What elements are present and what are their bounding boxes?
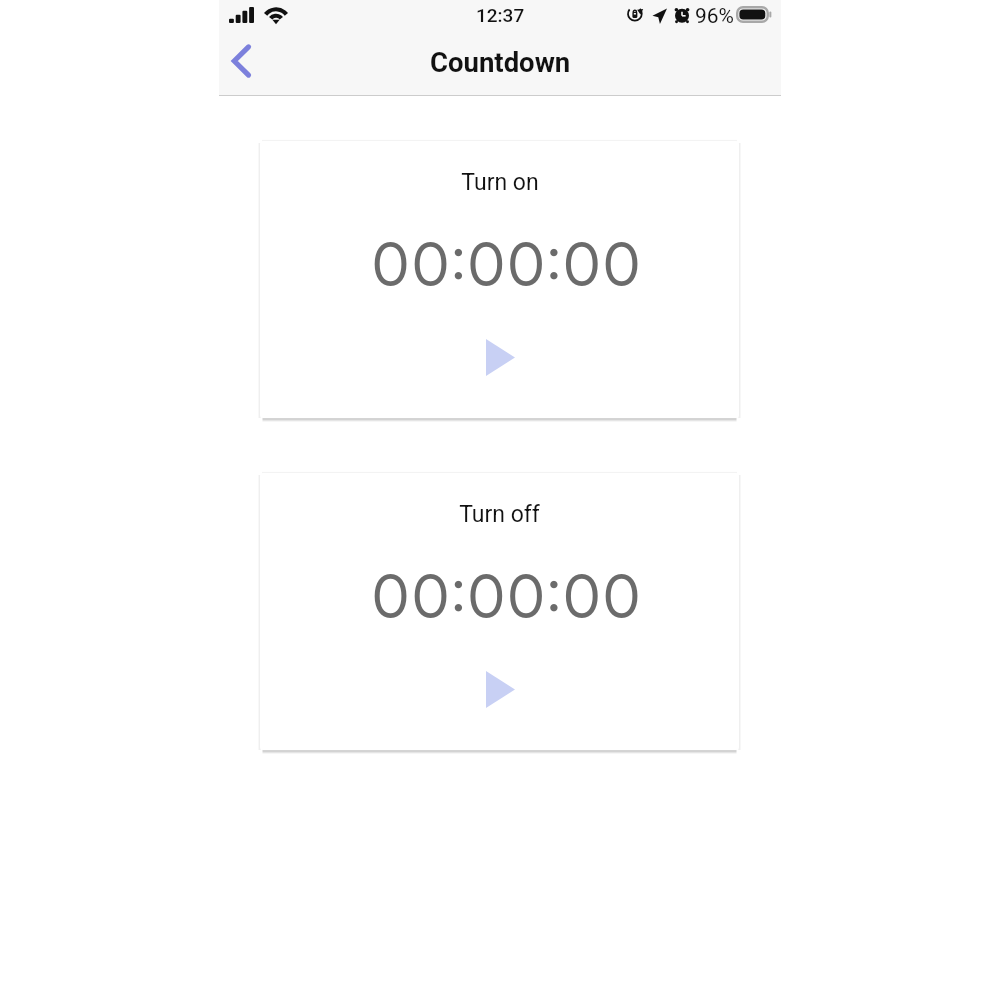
- staticText: 96%: [695, 4, 734, 29]
- staticText: Countdown: [430, 46, 571, 78]
- button[interactable]: Start: [470, 659, 530, 719]
- staticText: 00:00:00: [372, 227, 643, 300]
- staticText: 00:00:00: [372, 559, 643, 632]
- staticText: Turn on: [461, 169, 539, 196]
- button[interactable]: Start: [470, 327, 530, 387]
- staticText: 12:37: [476, 4, 525, 26]
- staticText: Turn off: [459, 501, 540, 528]
- button[interactable]: Turn off: [260, 473, 739, 750]
- button[interactable]: Back: [214, 34, 268, 88]
- button[interactable]: Turn on: [260, 141, 739, 418]
